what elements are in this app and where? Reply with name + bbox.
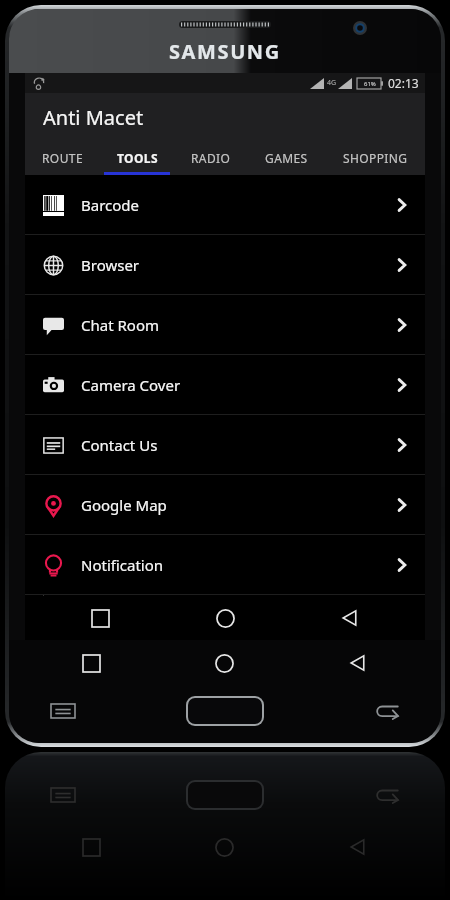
button[interactable]: Home key [188, 698, 262, 724]
button[interactable]: Home [208, 601, 242, 635]
staticText: Camera Cover [81, 375, 181, 395]
button[interactable]: Contact Us [25, 415, 425, 474]
button[interactable]: Notification [25, 535, 425, 594]
button[interactable]: Home key [188, 782, 262, 808]
button[interactable]: Chat Room [25, 295, 425, 354]
staticText: Google Map [81, 495, 167, 515]
button[interactable]: Back [333, 601, 367, 635]
staticText: Barcode [81, 195, 140, 215]
staticText: Anti Macet [43, 104, 144, 131]
button[interactable]: Recent apps [83, 601, 117, 635]
staticText: RADIO [191, 150, 231, 166]
button[interactable]: TOOLS [100, 141, 174, 175]
staticText: SAMSUNG [169, 38, 281, 65]
button[interactable]: ROUTE [25, 141, 100, 175]
staticText: ROUTE [42, 150, 83, 166]
staticText: 61% [364, 80, 376, 88]
staticText: Chat Room [81, 315, 159, 335]
button[interactable]: Camera Cover [25, 355, 425, 414]
staticText: 4G [327, 78, 337, 88]
staticText: TOOLS [117, 150, 158, 166]
button[interactable]: RADIO [174, 141, 248, 175]
staticText: Browser [81, 255, 140, 275]
button[interactable]: Barcode [25, 175, 425, 234]
staticText: 02:13 [388, 75, 419, 91]
button[interactable]: Google Map [25, 475, 425, 534]
staticText: SHOPPING [343, 150, 408, 166]
button[interactable]: GAMES [248, 141, 325, 175]
staticText: Notification [81, 555, 164, 575]
staticText: GAMES [265, 150, 308, 166]
staticText: Contact Us [81, 435, 158, 455]
button[interactable]: Browser [25, 235, 425, 294]
button[interactable]: SHOPPING [325, 141, 425, 175]
